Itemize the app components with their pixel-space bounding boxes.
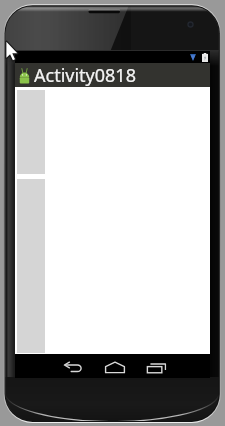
staticText: Activity0818 xyxy=(34,63,136,87)
button[interactable]: Recent apps xyxy=(136,356,177,378)
button[interactable]: Back xyxy=(52,356,93,378)
button[interactable]: Activity0818 xyxy=(15,63,210,87)
button[interactable]: Home xyxy=(94,356,135,378)
